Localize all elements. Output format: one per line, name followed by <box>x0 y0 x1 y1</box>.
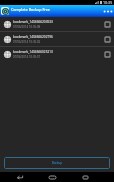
button[interactable]: App icon <box>1 7 9 15</box>
button[interactable]: bookmark_1404666025213 <box>0 47 114 61</box>
staticText: bookmark_1404666025213 <box>13 50 53 54</box>
button[interactable]: Home <box>45 172 59 182</box>
staticText: bookmark_1404666202796 <box>13 35 53 39</box>
button[interactable]: Back <box>12 172 26 182</box>
button[interactable]: bookmark_1404666202796 <box>0 32 114 46</box>
staticText: 07/06/2014 10:35:57 <box>13 55 41 59</box>
staticText: Backup <box>52 161 62 165</box>
button[interactable]: Backup <box>4 157 110 169</box>
button[interactable]: More options <box>102 5 114 17</box>
staticText: 07/06/2014 10:35:02 <box>13 40 41 44</box>
button[interactable]: Recent apps <box>78 172 92 182</box>
button[interactable]: Select item <box>102 34 112 44</box>
button[interactable]: Select item <box>102 49 112 59</box>
staticText: 10:35 <box>103 0 113 5</box>
button[interactable]: bookmark_1404666203533 <box>0 17 114 31</box>
button[interactable]: Select item <box>102 19 112 29</box>
staticText: Complete Backup Free <box>11 7 50 12</box>
staticText: 07/06/2014 10:35:08 <box>13 25 41 29</box>
staticText: bookmark_1404666203533 <box>13 20 53 24</box>
